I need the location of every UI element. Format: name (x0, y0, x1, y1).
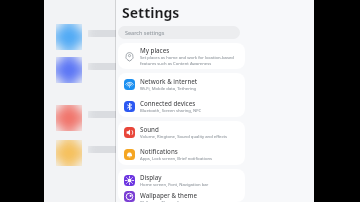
staticText: Wallpaper & theme (140, 191, 197, 199)
staticText: Apps, Lock screen, Brief notifications (140, 156, 213, 162)
staticText: Set places as home and work for location… (140, 55, 234, 66)
button[interactable]: Wallpaper & theme (118, 191, 245, 202)
button[interactable]: Display (118, 169, 245, 191)
staticText: Sound (140, 125, 159, 133)
staticText: Settings (122, 3, 180, 22)
button[interactable]: Network & internet (118, 73, 245, 95)
staticText: Home screen, Font, Navigation bar (140, 182, 209, 188)
button[interactable]: Sound (118, 121, 245, 143)
staticText: Bluetooth, Screen sharing, NFC (140, 108, 202, 114)
button[interactable]: Notifications (118, 143, 245, 165)
staticText: Display (140, 173, 162, 181)
staticText: Wi-Fi, Mobile data, Tethering (140, 86, 197, 92)
button[interactable]: Search settings (118, 26, 240, 39)
staticText: My places (140, 46, 170, 54)
button[interactable]: Connected devices (118, 95, 245, 117)
staticText: Notifications (140, 147, 178, 155)
staticText: Network & internet (140, 77, 198, 85)
button[interactable]: My places (118, 43, 245, 69)
staticText: Volume, Ringtone, Sound quality and effe… (140, 134, 227, 140)
staticText: Connected devices (140, 99, 196, 107)
staticText: Wallpaper, Theme, Icon (140, 200, 186, 202)
staticText: Search settings (125, 29, 165, 36)
